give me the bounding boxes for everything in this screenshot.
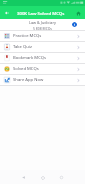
- button[interactable]: Take Quiz: [0, 42, 85, 53]
- staticText: 5,808 MCQs: [33, 26, 52, 30]
- button[interactable]: Recent apps: [56, 172, 67, 183]
- button[interactable]: Bookmark MCQs: [0, 53, 85, 64]
- button[interactable]: Home: [37, 172, 48, 183]
- button[interactable]: Home: [72, 7, 84, 19]
- staticText: Solved MCQs: [13, 66, 39, 72]
- staticText: Share App Now: [13, 77, 44, 83]
- button[interactable]: Law & Judiciary: [0, 19, 85, 30]
- staticText: Law & Judiciary: [29, 20, 56, 25]
- button[interactable]: Information: [72, 22, 77, 27]
- staticText: 300K Law Solved MCQs: [17, 10, 65, 16]
- staticText: Practice MCQs: [13, 33, 42, 39]
- button[interactable]: Back: [0, 6, 13, 19]
- button[interactable]: Share App Now: [0, 75, 85, 86]
- button[interactable]: Back: [18, 172, 29, 183]
- staticText: Bookmark MCQs: [13, 55, 46, 61]
- button[interactable]: Solved MCQs: [0, 64, 85, 75]
- staticText: Take Quiz: [13, 44, 32, 50]
- button[interactable]: Practice MCQs: [0, 31, 85, 42]
